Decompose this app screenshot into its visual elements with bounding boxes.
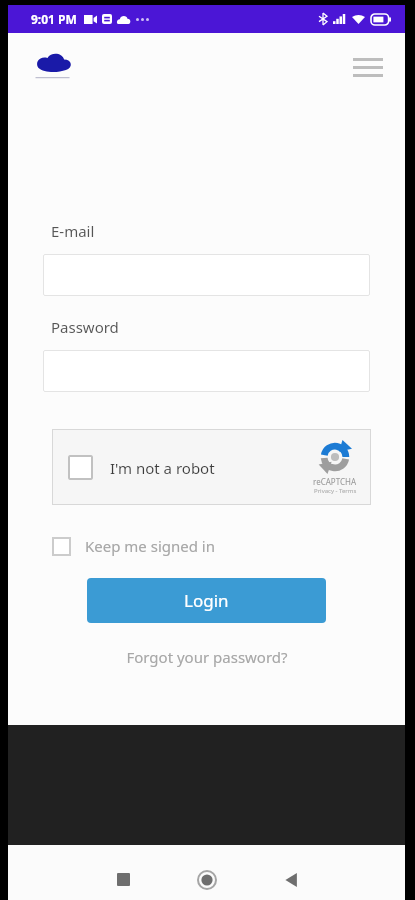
button[interactable]: Login (87, 578, 326, 623)
button[interactable]: Back (268, 859, 314, 900)
staticText: Login (184, 589, 229, 612)
button[interactable]: I'm not a robot (52, 429, 371, 505)
button[interactable]: Home (184, 859, 230, 900)
button[interactable]: Forgot your password? (120, 641, 294, 673)
staticText: Keep me signed in (85, 536, 215, 556)
button[interactable]: E-mail field (43, 254, 370, 296)
staticText: Password (51, 317, 119, 337)
button[interactable]: Password field (43, 350, 370, 392)
staticText: E-mail (51, 221, 95, 241)
staticText: I'm not a robot (110, 458, 215, 478)
button[interactable]: Logo (30, 48, 76, 86)
staticText: reCAPTCHA (313, 476, 357, 487)
button[interactable]: Keep me signed in (52, 536, 215, 556)
button[interactable]: Recent apps (100, 859, 146, 900)
staticText: 9:01 PM (31, 11, 77, 27)
button[interactable]: Menu (353, 55, 383, 79)
staticText: Privacy - Terms (314, 487, 357, 495)
